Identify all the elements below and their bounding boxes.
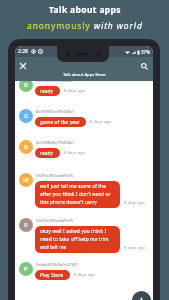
button[interactable]: Search: [136, 58, 152, 74]
staticText: G: [24, 112, 29, 120]
staticText: 37%: [141, 49, 150, 55]
staticText: 8 days ago: [64, 150, 86, 156]
staticText: 8a769fb5ef70438e1: [36, 140, 75, 146]
button[interactable]: W: [19, 173, 146, 208]
staticText: 8 days ago: [90, 119, 112, 125]
button[interactable]: 0: [19, 218, 146, 253]
staticText: Talk about Apps Store: [63, 72, 106, 78]
staticText: 8 days ago: [124, 200, 146, 206]
staticText: game of the year: [40, 119, 80, 125]
staticText: 2:28: [18, 48, 28, 55]
staticText: anonymously: [27, 20, 94, 32]
staticText: ready: [40, 88, 54, 94]
staticText: 8 days ago: [64, 88, 86, 94]
staticText: W: [23, 176, 29, 184]
button[interactable]: R: [19, 140, 86, 158]
staticText: Play Store: [40, 272, 64, 278]
staticText: 5691b2ff2udaf5cf5: [36, 173, 74, 179]
staticText: okay well I asked you think I need to ta…: [40, 228, 114, 251]
button[interactable]: R: [19, 78, 86, 96]
staticText: R: [24, 81, 28, 89]
staticText: well just tell me some of the after you …: [40, 183, 114, 206]
button[interactable]: Close: [15, 58, 31, 74]
staticText: ready: [40, 150, 54, 156]
staticText: R: [24, 143, 28, 151]
button[interactable]: New message: [132, 291, 151, 300]
staticText: 8a769f55ef70438e1: [36, 78, 75, 84]
button[interactable]: P: [19, 262, 96, 280]
staticText: 0: [24, 221, 28, 229]
staticText: 8 days ago: [124, 245, 146, 251]
staticText: 8a769f55ef70438e1: [36, 109, 75, 115]
button[interactable]: G: [19, 109, 112, 127]
staticText: 8 days ago: [74, 272, 96, 278]
staticText: P: [24, 265, 28, 273]
staticText: Talk about apps: [49, 4, 121, 16]
staticText: 9cba6539b3a0c27831: [36, 262, 79, 268]
staticText: with world: [94, 20, 143, 32]
staticText: 5691b2ff2udaf5cf5: [36, 218, 74, 224]
